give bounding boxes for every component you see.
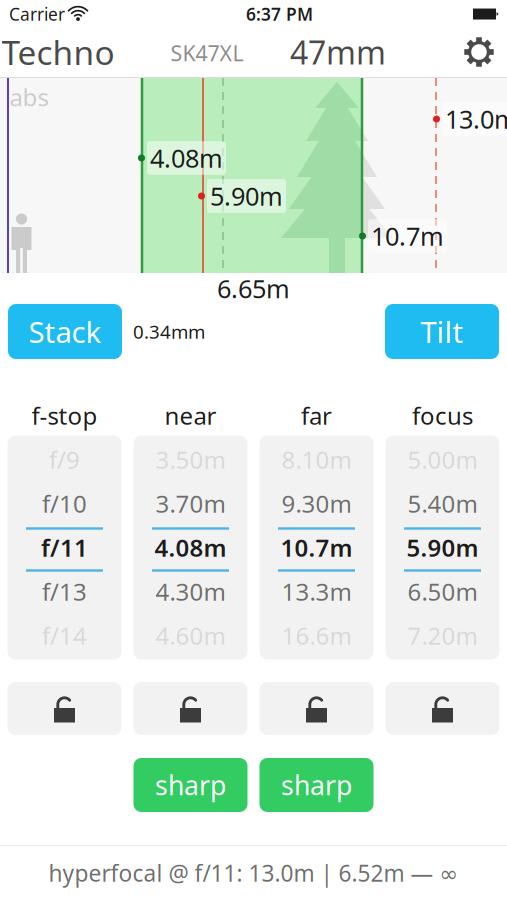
- staticText: 4.30m: [155, 576, 225, 607]
- staticText: 8.10m: [281, 444, 351, 475]
- staticText: 4.60m: [155, 620, 225, 651]
- button[interactable]: sharp: [133, 758, 247, 812]
- staticText: f/10: [42, 488, 87, 519]
- staticText: f/9: [49, 444, 80, 475]
- staticText: 3.70m: [155, 488, 225, 519]
- staticText: SK47XL: [170, 39, 243, 67]
- staticText: 10.7m: [280, 532, 352, 563]
- button[interactable]: Lock: [259, 682, 373, 735]
- staticText: 5.90m: [406, 532, 478, 563]
- staticText: focus: [412, 400, 473, 431]
- staticText: Tilt: [420, 312, 463, 351]
- staticText: 13.3m: [281, 576, 351, 607]
- button[interactable]: Lock: [385, 682, 499, 735]
- staticText: 3.50m: [155, 444, 225, 475]
- staticText: 16.6m: [281, 620, 351, 651]
- staticText: f-stop: [31, 400, 97, 431]
- staticText: 5.00m: [407, 444, 477, 475]
- button[interactable]: Settings: [464, 37, 494, 67]
- staticText: Stack: [28, 312, 101, 351]
- button[interactable]: Stack: [8, 304, 122, 359]
- button[interactable]: Lock: [133, 682, 247, 735]
- staticText: 4.08m: [154, 532, 226, 563]
- staticText: f/13: [42, 576, 87, 607]
- staticText: near: [164, 400, 216, 431]
- staticText: hyperfocal @ f/11: 13.0m | 6.52m — ∞: [48, 858, 458, 888]
- staticText: Carrier: [9, 2, 65, 25]
- staticText: 4.08m: [150, 141, 223, 175]
- staticText: 7.20m: [407, 620, 477, 651]
- staticText: 5.90m: [210, 179, 283, 213]
- staticText: 0.34mm: [133, 319, 205, 344]
- staticText: 9.30m: [281, 488, 351, 519]
- staticText: 10.7m: [371, 219, 444, 253]
- button[interactable]: Lock: [7, 682, 121, 735]
- button[interactable]: sharp: [259, 758, 373, 812]
- button[interactable]: Tilt: [385, 304, 499, 359]
- staticText: Techno: [1, 30, 114, 74]
- staticText: far: [301, 400, 332, 431]
- staticText: sharp: [281, 767, 352, 803]
- staticText: f/11: [41, 532, 88, 563]
- staticText: 6.65m: [217, 272, 290, 305]
- staticText: 13.0m: [445, 102, 507, 136]
- staticText: abs: [9, 81, 48, 113]
- staticText: 5.40m: [407, 488, 477, 519]
- staticText: 6:37 PM: [246, 2, 313, 25]
- staticText: sharp: [155, 767, 226, 803]
- staticText: 6.50m: [407, 576, 477, 607]
- staticText: 47mm: [290, 31, 386, 73]
- staticText: f/14: [42, 620, 87, 651]
